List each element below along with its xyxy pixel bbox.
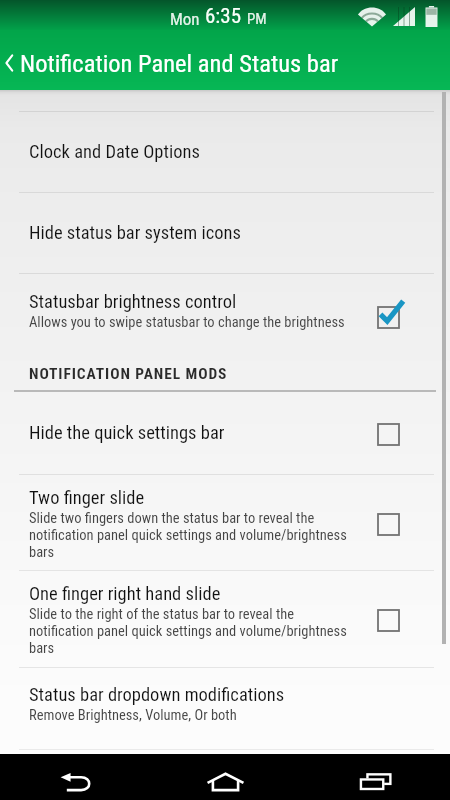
staticText: 6:35 — [205, 4, 242, 29]
button[interactable]: One finger right hand slide — [0, 571, 450, 667]
button[interactable]: Hide the quick settings bar — [0, 391, 450, 474]
staticText: Remove Brightness, Volume, Or both — [29, 707, 237, 724]
staticText: Slide to the right of the status bar to … — [29, 606, 347, 657]
staticText: Two finger slide — [29, 487, 145, 509]
staticText: One finger right hand slide — [29, 583, 221, 605]
button[interactable]: Statusbar brightness control — [0, 274, 450, 358]
staticText: Allows you to swipe statusbar to change … — [29, 314, 345, 331]
staticText: Hide the quick settings bar — [29, 422, 225, 444]
button[interactable]: Hide status bar system icons — [0, 193, 450, 273]
staticText: Hide status bar system icons — [29, 222, 241, 244]
staticText: NOTIFICATION PANEL MODS — [29, 365, 228, 383]
button[interactable]: Clock and Date Options — [0, 112, 450, 192]
staticText: Slide two fingers down the status bar to… — [29, 510, 347, 561]
staticText: Notification Panel and Status bar — [20, 49, 339, 78]
button[interactable]: Home — [180, 754, 270, 800]
staticText: Statusbar brightness control — [29, 291, 237, 313]
button[interactable]: Back — [30, 754, 120, 800]
button[interactable]: Notification Panel and Status bar — [0, 33, 450, 93]
button[interactable]: Recent apps — [330, 754, 420, 800]
button[interactable]: Two finger slide — [0, 475, 450, 570]
staticText: Mon — [170, 9, 200, 29]
staticText: Clock and Date Options — [29, 141, 200, 163]
button[interactable]: Status bar dropdown modifications — [0, 668, 450, 749]
staticText: Status bar dropdown modifications — [29, 684, 285, 706]
staticText: PM — [247, 10, 267, 28]
